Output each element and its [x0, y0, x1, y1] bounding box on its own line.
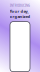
staticText: Your day, organized [9, 8, 30, 19]
staticText: INTRODUCING [10, 4, 30, 7]
